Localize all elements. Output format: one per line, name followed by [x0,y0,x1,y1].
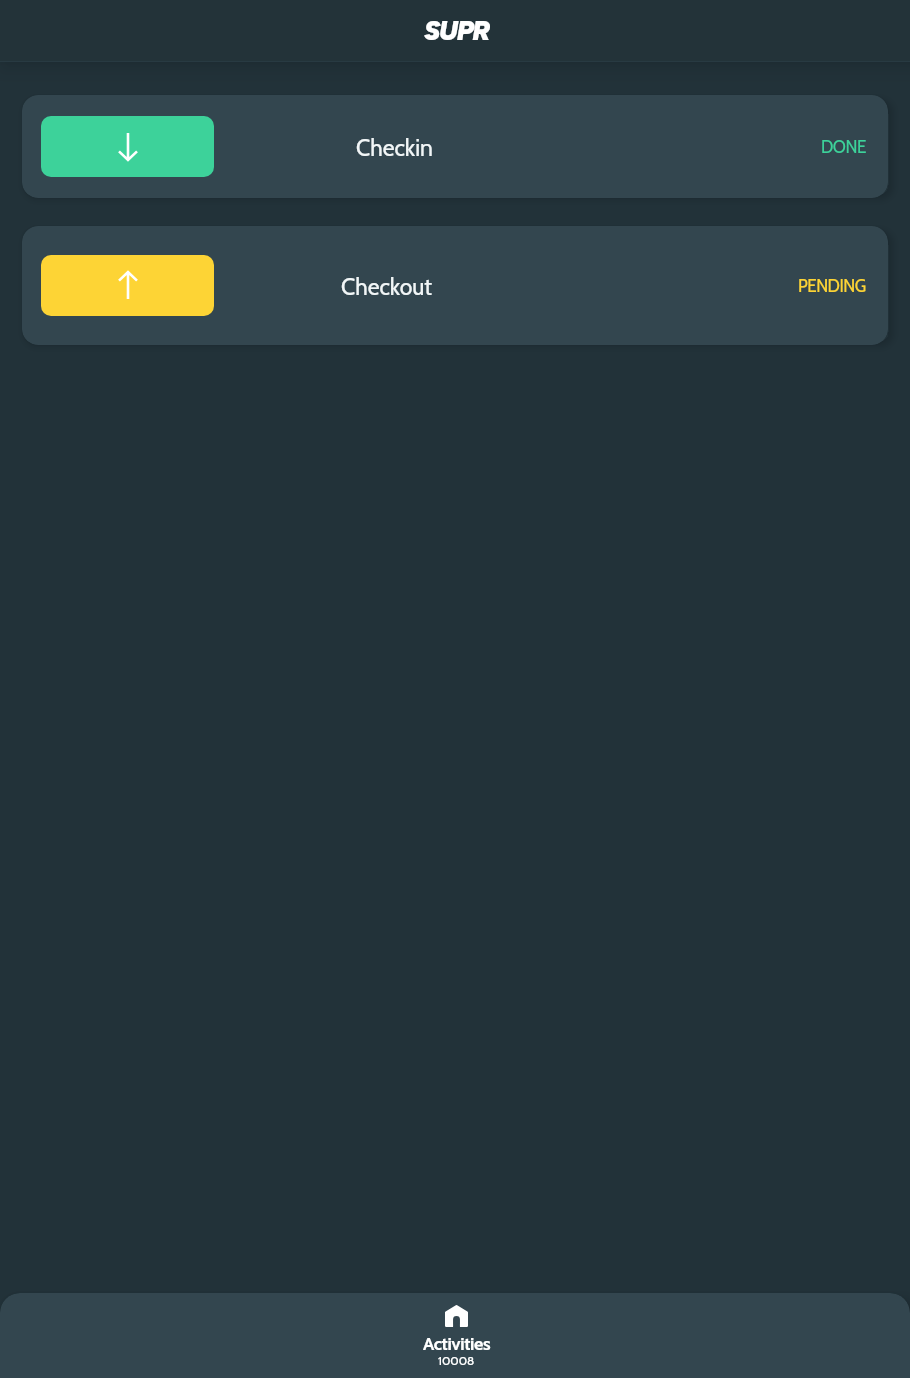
staticText: DONE [821,137,866,158]
staticText: SUPR [424,14,490,46]
button[interactable]: Checkin [41,116,214,177]
button[interactable]: Checkin [22,95,888,198]
staticText: Checkin [356,134,433,162]
staticText: PENDING [798,276,866,297]
button[interactable]: Activities [350,1293,560,1378]
button[interactable]: Checkout [41,255,214,316]
other: Activities [445,1304,468,1327]
staticText: Activities [423,1333,491,1355]
button[interactable]: Checkout [22,226,888,345]
staticText: 10008 [438,1353,475,1368]
staticText: Checkout [341,273,433,301]
